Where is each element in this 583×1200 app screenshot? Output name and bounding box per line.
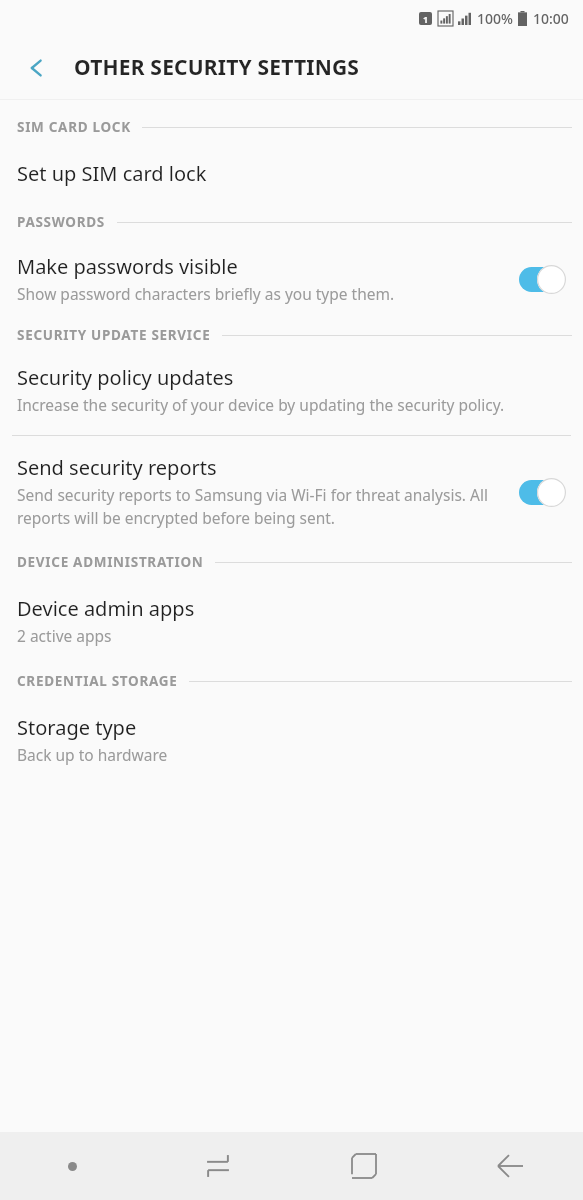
staticText: Send security reports (17, 454, 217, 481)
button[interactable]: Security policy updates (0, 362, 583, 417)
button[interactable]: Send security reports (0, 452, 583, 531)
button[interactable]: Back (16, 46, 60, 90)
button[interactable]: Back (437, 1132, 583, 1200)
staticText: Increase the security of your device by … (17, 394, 505, 415)
button[interactable]: Set up SIM card lock (0, 158, 583, 189)
staticText: CREDENTIAL STORAGE (17, 672, 178, 690)
staticText: Send security reports to Samsung via Wi-… (17, 484, 506, 529)
staticText: 100% (477, 9, 513, 28)
button[interactable]: Toggle (518, 477, 566, 507)
staticText: Security policy updates (17, 364, 234, 391)
staticText: Storage type (17, 714, 137, 741)
button[interactable]: Toggle (518, 264, 566, 294)
button[interactable]: Home (291, 1132, 437, 1200)
staticText: Set up SIM card lock (17, 160, 207, 187)
staticText: Show password characters briefly as you … (17, 283, 395, 304)
staticText: SECURITY UPDATE SERVICE (17, 326, 211, 344)
staticText: 10:00 (533, 9, 569, 28)
button[interactable]: Device admin apps (0, 593, 583, 648)
staticText: 2 active apps (17, 625, 112, 646)
staticText: SIM CARD LOCK (17, 118, 131, 136)
staticText: 1 (423, 13, 429, 25)
staticText: OTHER SECURITY SETTINGS (74, 53, 360, 82)
staticText: PASSWORDS (17, 213, 106, 231)
button[interactable]: Storage type (0, 712, 583, 767)
staticText: Back up to hardware (17, 744, 168, 765)
button[interactable]: Recents (145, 1132, 291, 1200)
staticText: DEVICE ADMINISTRATION (17, 553, 204, 571)
button[interactable]: Make passwords visible (0, 251, 583, 306)
staticText: Make passwords visible (17, 253, 238, 280)
staticText: Device admin apps (17, 595, 195, 622)
